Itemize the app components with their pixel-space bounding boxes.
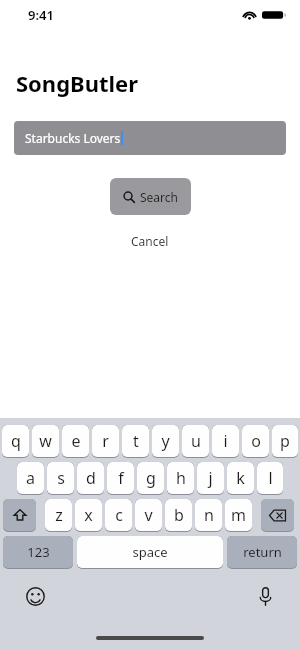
button[interactable]: w xyxy=(32,425,59,457)
button[interactable]: k xyxy=(227,462,254,494)
button[interactable]: Backspace xyxy=(261,499,294,531)
staticText: 9:41 xyxy=(28,6,54,24)
button[interactable]: a xyxy=(17,462,44,494)
button[interactable]: return xyxy=(227,536,297,568)
button[interactable]: f xyxy=(107,462,134,494)
staticText: Cancel xyxy=(131,233,169,249)
staticText: r xyxy=(102,430,109,452)
button[interactable]: Starbucks Lovers xyxy=(14,121,286,155)
staticText: space xyxy=(132,543,168,561)
button[interactable]: d xyxy=(77,462,104,494)
staticText: x xyxy=(84,504,93,526)
button[interactable]: m xyxy=(225,499,252,531)
staticText: i xyxy=(223,430,228,452)
button[interactable]: q xyxy=(2,425,29,457)
staticText: SongButler xyxy=(16,68,139,98)
button[interactable]: p xyxy=(272,425,298,457)
button[interactable]: l xyxy=(257,462,283,494)
button[interactable]: v xyxy=(135,499,162,531)
button[interactable]: n xyxy=(195,499,222,531)
button[interactable]: Cancel xyxy=(121,229,179,253)
staticText: l xyxy=(268,467,273,489)
button[interactable]: u xyxy=(182,425,209,457)
staticText: v xyxy=(144,504,153,526)
staticText: Search xyxy=(140,189,178,205)
button[interactable]: s xyxy=(47,462,74,494)
button[interactable]: j xyxy=(197,462,224,494)
staticText: d xyxy=(86,467,96,489)
button[interactable]: o xyxy=(242,425,269,457)
button[interactable]: h xyxy=(167,462,194,494)
staticText: j xyxy=(208,467,213,489)
button[interactable]: r xyxy=(92,425,119,457)
button[interactable]: Shift xyxy=(3,499,36,531)
button[interactable]: Dictation xyxy=(252,583,278,609)
staticText: 123 xyxy=(27,543,50,561)
staticText: h xyxy=(176,467,186,489)
button[interactable]: z xyxy=(45,499,72,531)
button[interactable]: g xyxy=(137,462,164,494)
staticText: q xyxy=(11,430,21,452)
button[interactable]: x xyxy=(75,499,102,531)
staticText: w xyxy=(39,430,52,452)
staticText: c xyxy=(115,504,123,526)
staticText: a xyxy=(26,467,35,489)
button[interactable]: y xyxy=(152,425,179,457)
staticText: s xyxy=(57,467,65,489)
staticText: return xyxy=(243,543,282,561)
button[interactable]: c xyxy=(105,499,132,531)
staticText: y xyxy=(161,430,170,452)
staticText: f xyxy=(118,467,124,489)
staticText: k xyxy=(236,467,245,489)
button[interactable]: Emoji xyxy=(22,583,48,609)
staticText: e xyxy=(71,430,81,452)
staticText: n xyxy=(204,504,214,526)
button[interactable]: space xyxy=(77,536,223,568)
button[interactable]: Search xyxy=(110,178,191,215)
staticText: u xyxy=(191,430,201,452)
staticText: b xyxy=(174,504,184,526)
staticText: g xyxy=(146,467,156,489)
staticText: p xyxy=(280,430,290,452)
button[interactable]: e xyxy=(62,425,89,457)
staticText: t xyxy=(133,430,139,452)
staticText: Starbucks Lovers xyxy=(25,130,121,146)
button[interactable]: b xyxy=(165,499,192,531)
staticText: o xyxy=(251,430,261,452)
button[interactable]: 123 xyxy=(3,536,73,568)
button[interactable]: i xyxy=(212,425,239,457)
staticText: m xyxy=(231,504,246,526)
button[interactable]: t xyxy=(122,425,149,457)
staticText: z xyxy=(55,504,63,526)
